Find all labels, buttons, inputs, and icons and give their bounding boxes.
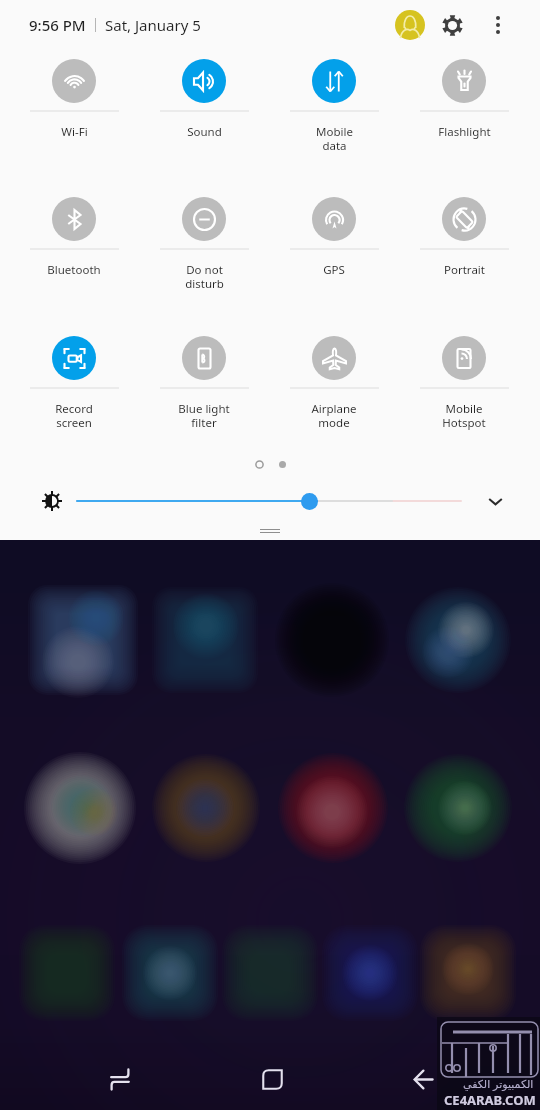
staticText: Do not disturb bbox=[185, 262, 224, 291]
staticText: Sat, January 5 bbox=[105, 15, 201, 35]
staticText: Wi-Fi bbox=[61, 124, 88, 140]
button[interactable]: Airplane mode bbox=[269, 329, 399, 467]
staticText: Record screen bbox=[55, 401, 93, 430]
button[interactable]: More options bbox=[479, 6, 517, 44]
button[interactable]: Recents bbox=[70, 1048, 170, 1110]
staticText: Portrait bbox=[444, 262, 485, 278]
button[interactable]: User profile bbox=[391, 6, 429, 44]
button[interactable]: Mobile data bbox=[269, 52, 399, 190]
button[interactable]: Back bbox=[373, 1048, 473, 1110]
button[interactable]: Expand bbox=[487, 493, 504, 510]
button[interactable]: Portrait bbox=[399, 190, 529, 328]
button[interactable]: Flashlight bbox=[399, 52, 529, 190]
staticText: Mobile data bbox=[316, 124, 353, 153]
button[interactable]: Mobile Hotspot bbox=[399, 329, 529, 467]
button[interactable]: Wi-Fi bbox=[9, 52, 139, 190]
button[interactable]: GPS bbox=[269, 190, 399, 328]
button[interactable]: Do not disturb bbox=[139, 190, 269, 328]
staticText: Sound bbox=[187, 124, 222, 140]
button[interactable]: Record screen bbox=[9, 329, 139, 467]
button[interactable]: Blue light filter bbox=[139, 329, 269, 467]
button[interactable]: Bluetooth bbox=[9, 190, 139, 328]
staticText: الكمبيوتر الكفي bbox=[463, 1076, 534, 1091]
staticText: CE4ARAB.COM bbox=[444, 1091, 536, 1109]
staticText: Flashlight bbox=[438, 124, 491, 140]
staticText: 9:56 PM bbox=[29, 15, 86, 35]
staticText: Airplane mode bbox=[311, 401, 357, 430]
staticText: Mobile Hotspot bbox=[442, 401, 486, 430]
staticText: GPS bbox=[323, 262, 345, 278]
button[interactable]: Settings bbox=[433, 6, 471, 44]
button[interactable]: Home bbox=[222, 1048, 322, 1110]
staticText: Bluetooth bbox=[47, 262, 101, 278]
staticText: Blue light filter bbox=[178, 401, 230, 430]
button[interactable]: Sound bbox=[139, 52, 269, 190]
